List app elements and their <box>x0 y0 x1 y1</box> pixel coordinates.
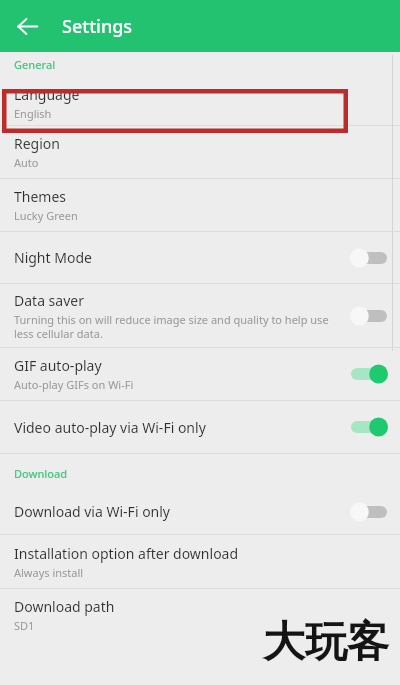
staticText: Region <box>14 134 60 153</box>
staticText: English <box>14 106 52 121</box>
button[interactable]: Installation option after download <box>0 535 400 588</box>
staticText: Video auto-play via Wi-Fi only <box>14 418 206 437</box>
button[interactable]: Download path <box>0 589 400 641</box>
button[interactable]: Back <box>7 6 47 46</box>
staticText: Language <box>14 85 80 104</box>
staticText: Themes <box>14 187 67 206</box>
staticText: SD1 <box>14 618 35 633</box>
button[interactable]: Video auto-play via Wi-Fi only <box>0 401 400 453</box>
staticText: Night Mode <box>14 248 92 267</box>
button[interactable]: Language <box>0 80 400 125</box>
button[interactable]: Download via Wi-Fi only <box>0 489 400 534</box>
staticText: 大玩客 <box>263 616 389 669</box>
staticText: General <box>14 57 56 72</box>
staticText: Auto-play GIFs on Wi-Fi <box>14 377 134 392</box>
staticText: Download path <box>14 597 115 616</box>
staticText: Always install <box>14 565 84 580</box>
staticText: Data saver <box>14 291 84 310</box>
staticText: Installation option after download <box>14 544 239 563</box>
staticText: Turning this on will reduce image size a… <box>14 312 329 341</box>
button[interactable]: Region <box>0 126 400 178</box>
staticText: Download <box>14 466 68 481</box>
button[interactable]: Themes <box>0 179 400 231</box>
staticText: Lucky Green <box>14 208 78 223</box>
button[interactable]: Data saver <box>0 284 400 347</box>
staticText: Settings <box>62 14 133 39</box>
button[interactable]: GIF auto-play <box>0 348 400 400</box>
staticText: GIF auto-play <box>14 356 102 375</box>
button[interactable]: Night Mode <box>0 232 400 283</box>
staticText: Download via Wi-Fi only <box>14 502 171 521</box>
staticText: Auto <box>14 155 39 170</box>
